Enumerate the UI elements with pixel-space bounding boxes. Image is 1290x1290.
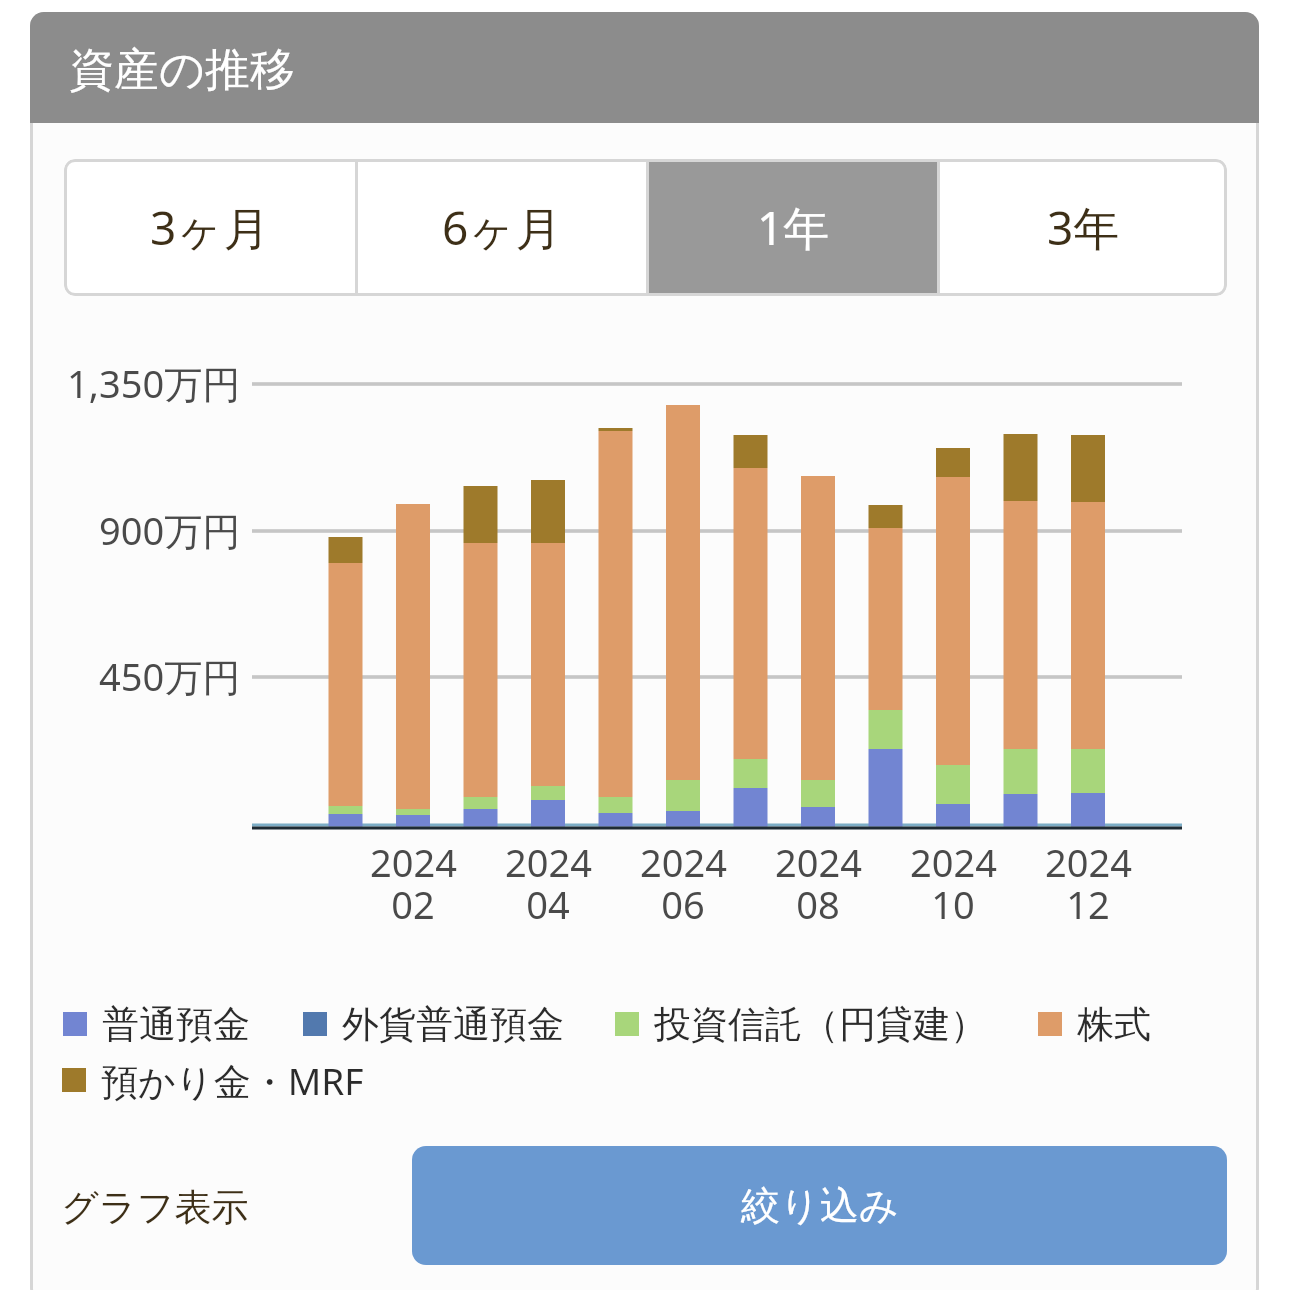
staticText: グラフ表示 bbox=[61, 1184, 249, 1231]
button[interactable]: 6ヶ月 bbox=[358, 159, 646, 296]
staticText: 2024 bbox=[775, 836, 862, 888]
staticText: 普通預金 bbox=[102, 1001, 250, 1048]
staticText: 900万円 bbox=[99, 504, 241, 556]
button[interactable]: 3ヶ月 bbox=[64, 159, 355, 296]
button[interactable]: 1年 bbox=[649, 159, 937, 296]
staticText: 3年 bbox=[1047, 196, 1120, 259]
staticText: 投資信託（円貸建） bbox=[654, 1001, 987, 1048]
button[interactable]: 絞り込み bbox=[412, 1146, 1227, 1265]
button[interactable]: グラフ表示 bbox=[61, 1163, 251, 1243]
staticText: 株式 bbox=[1077, 1001, 1151, 1048]
staticText: 1年 bbox=[757, 196, 830, 259]
staticText: 外貨普通預金 bbox=[342, 1001, 564, 1048]
staticText: 6ヶ月 bbox=[442, 196, 562, 259]
staticText: 04 bbox=[526, 878, 570, 930]
staticText: 1,350万円 bbox=[67, 357, 241, 409]
staticText: 08 bbox=[796, 878, 840, 930]
staticText: 2024 bbox=[640, 836, 727, 888]
staticText: 3ヶ月 bbox=[150, 196, 270, 259]
staticText: 資産の推移 bbox=[69, 42, 296, 99]
staticText: 預かり金・MRF bbox=[101, 1055, 364, 1106]
staticText: 450万円 bbox=[99, 650, 241, 702]
staticText: 10 bbox=[931, 878, 975, 930]
staticText: 2024 bbox=[370, 836, 457, 888]
staticText: 2024 bbox=[505, 836, 592, 888]
staticText: 12 bbox=[1066, 878, 1110, 930]
staticText: 06 bbox=[661, 878, 705, 930]
button[interactable]: 3年 bbox=[940, 159, 1227, 296]
staticText: 02 bbox=[391, 878, 435, 930]
staticText: 2024 bbox=[910, 836, 997, 888]
staticText: 絞り込み bbox=[741, 1181, 899, 1230]
staticText: 2024 bbox=[1045, 836, 1132, 888]
